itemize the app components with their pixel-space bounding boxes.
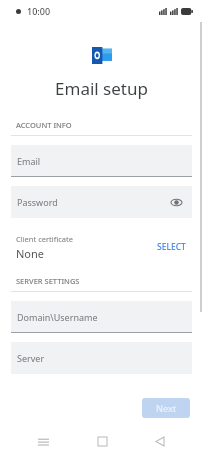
- staticText: Client certificate: [16, 234, 73, 244]
- staticText: 10:00: [27, 5, 51, 17]
- button[interactable]: Show password: [168, 194, 184, 210]
- staticText: Email: [17, 155, 41, 167]
- staticText: Server: [17, 352, 45, 364]
- button[interactable]: SELECT: [151, 235, 192, 259]
- button[interactable]: Back: [144, 428, 176, 454]
- button[interactable]: Password: [11, 186, 192, 218]
- button[interactable]: Recent apps: [27, 428, 59, 454]
- staticText: None: [16, 246, 45, 261]
- staticText: SELECT: [157, 241, 186, 253]
- button[interactable]: Home: [86, 428, 118, 454]
- staticText: Next: [156, 402, 177, 414]
- staticText: Password: [17, 196, 58, 208]
- staticText: ACCOUNT INFO: [16, 120, 72, 130]
- staticText: SERVER SETTINGS: [16, 276, 80, 286]
- button[interactable]: Server: [11, 342, 192, 374]
- staticText: Email setup: [55, 77, 148, 100]
- staticText: Domain\Username: [17, 311, 98, 323]
- button[interactable]: Next: [142, 398, 190, 418]
- button[interactable]: Email: [11, 145, 192, 177]
- button[interactable]: Domain\Username: [11, 301, 192, 333]
